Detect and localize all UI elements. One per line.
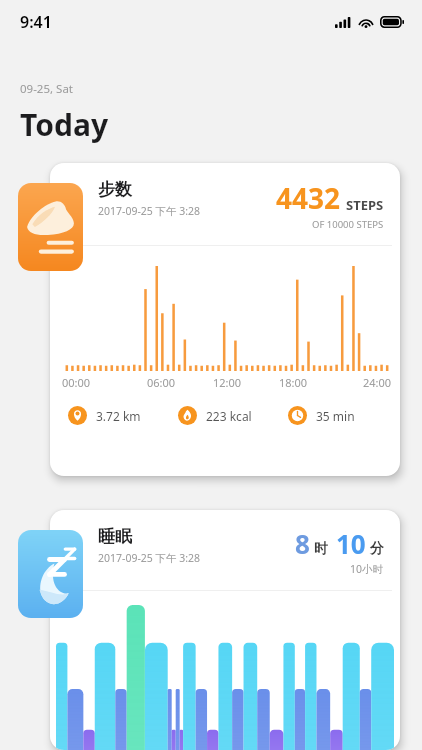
staticText: 09-25, Sat xyxy=(20,81,74,97)
staticText: Today xyxy=(20,104,109,145)
button[interactable]: 步数 xyxy=(50,163,400,476)
staticText: 18:00 xyxy=(279,375,308,390)
staticText: 12:00 xyxy=(213,375,242,390)
staticText: 2017-09-25 下午 3:28 xyxy=(98,204,201,218)
staticText: 06:00 xyxy=(147,375,176,390)
staticText: 10 xyxy=(336,526,366,561)
button[interactable]: Duration xyxy=(280,406,390,425)
staticText: 35 min xyxy=(316,408,355,424)
button[interactable]: Sleep xyxy=(18,530,83,618)
staticText: 223 kcal xyxy=(206,408,252,424)
staticText: 10小时 xyxy=(350,562,384,576)
staticText: 8 xyxy=(295,526,310,561)
other: Calories xyxy=(178,406,197,425)
staticText: 3.72 km xyxy=(96,408,141,424)
staticText: 24:00 xyxy=(363,375,392,390)
staticText: 分 xyxy=(370,540,384,558)
staticText: OF 10000 STEPS xyxy=(312,218,384,231)
button[interactable]: Distance xyxy=(60,406,170,425)
staticText: 时 xyxy=(314,540,328,558)
button[interactable]: 睡眠 xyxy=(50,510,400,750)
staticText: 9:41 xyxy=(20,11,52,33)
button[interactable]: Steps xyxy=(18,183,83,271)
staticText: 2017-09-25 下午 3:28 xyxy=(98,551,201,565)
staticText: 4432 xyxy=(276,179,341,217)
staticText: 步数 xyxy=(98,179,132,200)
other: Duration xyxy=(288,406,307,425)
button[interactable]: Calories xyxy=(170,406,280,425)
staticText: 00:00 xyxy=(62,375,91,390)
staticText: STEPS xyxy=(346,196,384,214)
other: Distance xyxy=(68,406,87,425)
staticText: 睡眠 xyxy=(98,526,132,547)
